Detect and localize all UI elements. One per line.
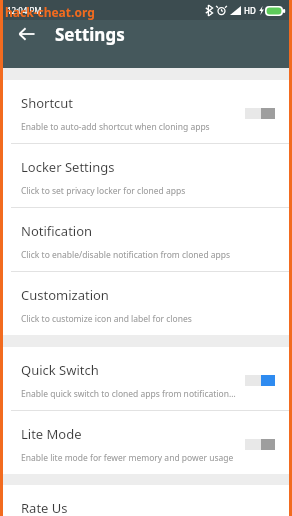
staticText: Customization — [21, 286, 109, 304]
button[interactable]: Quick Switch toggle — [245, 375, 275, 386]
staticText: Enable to auto-add shortcut when cloning… — [21, 121, 210, 133]
staticText: Click to set privacy locker for cloned a… — [21, 185, 186, 197]
staticText: Quick Switch — [21, 361, 99, 379]
staticText: HD — [244, 5, 256, 16]
button[interactable]: Locker Settings — [3, 144, 289, 208]
staticText: Locker Settings — [21, 158, 115, 176]
button[interactable]: Shortcut toggle — [245, 108, 275, 119]
staticText: Settings — [55, 23, 125, 46]
button[interactable]: Customization — [3, 272, 289, 335]
staticText: Notification — [21, 222, 93, 240]
staticText: Lite Mode — [21, 425, 82, 443]
button[interactable]: Back — [13, 20, 41, 48]
button[interactable]: Notification — [3, 208, 289, 272]
staticText: hack-cheat.org — [5, 4, 95, 20]
staticText: 12:04 PM — [7, 5, 42, 16]
staticText: Enable quick switch to cloned apps from … — [21, 388, 237, 400]
staticText: Rate Us — [21, 499, 68, 516]
staticText: Shortcut — [21, 94, 74, 112]
button[interactable]: Lite Mode toggle — [245, 439, 275, 450]
button[interactable]: Rate Us — [3, 485, 289, 516]
button[interactable]: Lite Mode — [3, 411, 289, 474]
staticText: Click to enable/disable notification fro… — [21, 249, 231, 261]
staticText: Click to customize icon and label for cl… — [21, 313, 192, 325]
button[interactable]: Shortcut — [3, 80, 289, 144]
staticText: Enable lite mode for fewer memory and po… — [21, 452, 234, 464]
button[interactable]: Quick Switch — [3, 347, 289, 411]
